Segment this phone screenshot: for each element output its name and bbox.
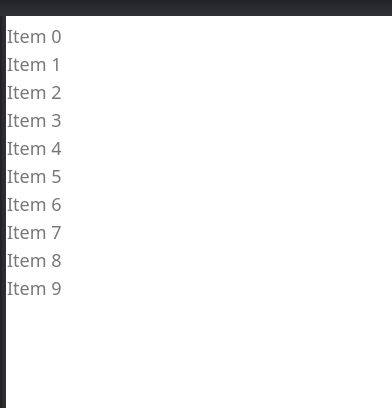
button[interactable]: Item 2 — [6, 78, 392, 106]
staticText: Item 4 — [7, 136, 62, 161]
button[interactable]: Item 5 — [6, 162, 392, 190]
staticText: Item 9 — [7, 276, 62, 301]
button[interactable]: Item 3 — [6, 106, 392, 134]
button[interactable]: Item 0 — [6, 22, 392, 50]
staticText: Item 6 — [7, 192, 62, 217]
staticText: Item 2 — [7, 80, 62, 105]
button[interactable]: Item 7 — [6, 218, 392, 246]
staticText: Item 1 — [7, 52, 62, 77]
staticText: Item 8 — [7, 248, 62, 273]
staticText: Item 3 — [7, 108, 62, 133]
button[interactable]: Item 1 — [6, 50, 392, 78]
staticText: Item 0 — [7, 24, 62, 49]
button[interactable]: Item 8 — [6, 246, 392, 274]
staticText: Item 7 — [7, 220, 62, 245]
button[interactable]: Item 4 — [6, 134, 392, 162]
button[interactable]: Item 6 — [6, 190, 392, 218]
staticText: Item 5 — [7, 164, 62, 189]
button[interactable]: Item 9 — [6, 274, 392, 302]
